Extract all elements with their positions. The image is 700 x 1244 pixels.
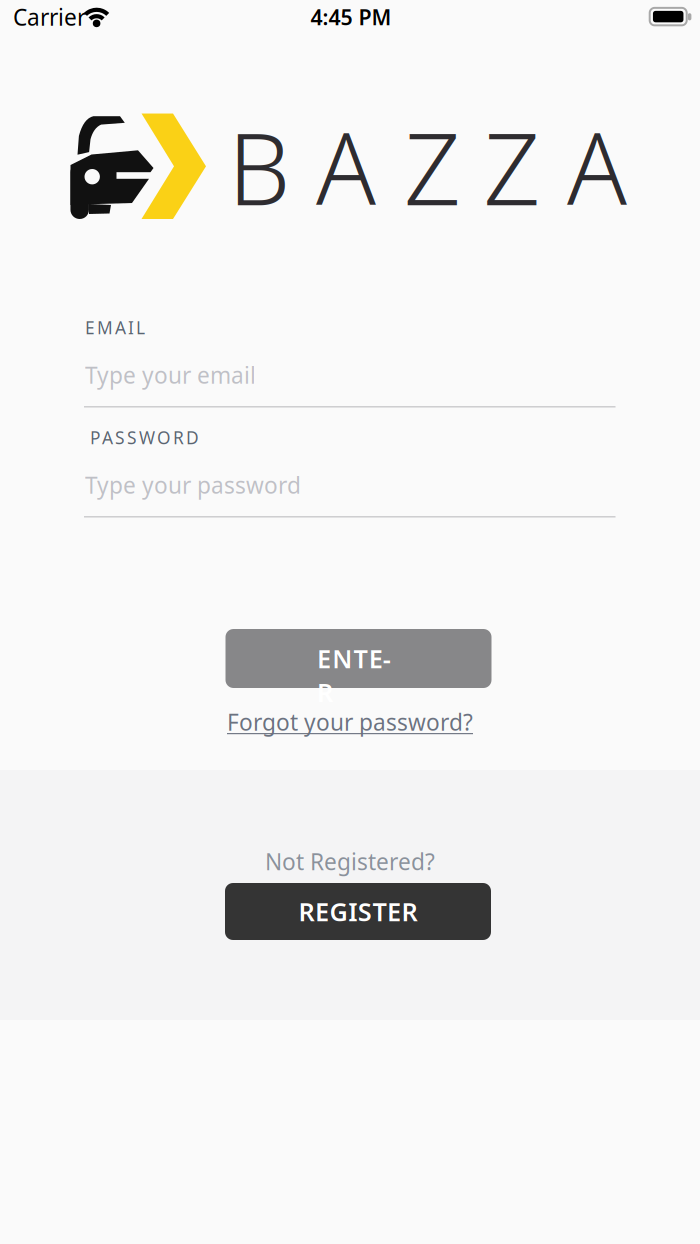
staticText: Carrier (13, 2, 86, 32)
staticText: REGISTER (298, 895, 418, 928)
staticText: Z (483, 101, 540, 232)
button[interactable]: ENTER (225, 629, 491, 688)
staticText: A (567, 101, 627, 232)
staticText: Type your email (85, 360, 256, 390)
button[interactable]: Type your email (84, 360, 615, 407)
staticText: PASSWORD (90, 426, 199, 449)
button[interactable]: REGISTER (225, 883, 491, 940)
staticText: ENTER (317, 642, 400, 675)
staticText: 4:45 PM (310, 3, 391, 31)
staticText: Type your password (85, 470, 301, 500)
staticText: B (228, 101, 290, 232)
staticText: Z (404, 101, 461, 232)
staticText: EMAIL (85, 316, 145, 339)
staticText: Not Registered? (265, 846, 435, 876)
button[interactable]: Forgot your password? (227, 707, 473, 737)
staticText: Forgot your password? (227, 707, 473, 737)
staticText: A (316, 101, 376, 232)
button[interactable]: Type your password (84, 470, 615, 517)
